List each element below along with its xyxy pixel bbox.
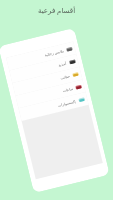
- staticText: ساعات: [62, 87, 74, 93]
- button[interactable]: أحذية: [9, 54, 79, 83]
- staticText: ملابس رجالية: [44, 48, 65, 58]
- button[interactable]: ساعات: [15, 79, 85, 108]
- staticText: أحذية: [58, 62, 68, 68]
- staticText: حقائب: [60, 74, 71, 80]
- staticText: إكسسوارات: [58, 99, 77, 108]
- button[interactable]: حقائب: [12, 67, 82, 96]
- button[interactable]: ملابس رجالية: [6, 41, 76, 70]
- button[interactable]: إكسسوارات: [18, 92, 89, 121]
- staticText: أقسام فرعية: [38, 6, 76, 16]
